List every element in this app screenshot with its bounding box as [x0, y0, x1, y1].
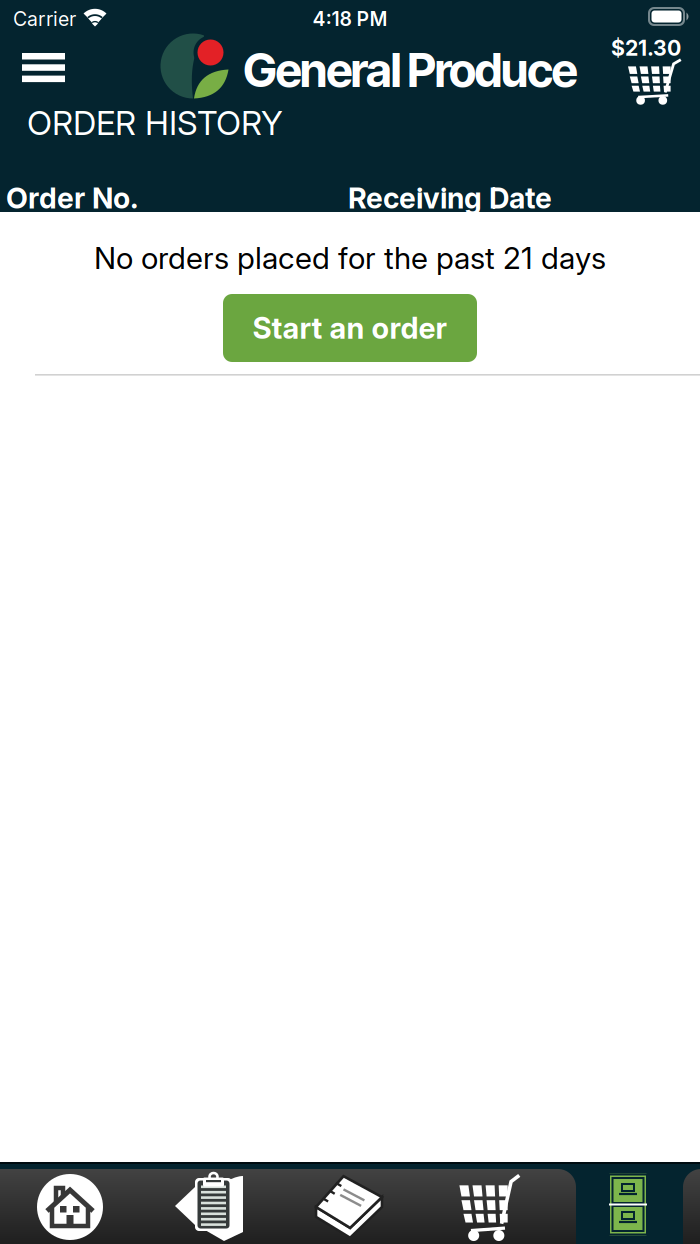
button[interactable]: Menu — [22, 53, 65, 82]
button[interactable]: Home — [0, 1162, 140, 1244]
staticText: 4:18 PM — [312, 7, 387, 31]
button[interactable]: Order History — [560, 1162, 700, 1244]
staticText: Carrier — [13, 7, 76, 31]
staticText: Receiving Date — [348, 181, 552, 215]
button[interactable]: Catalog — [280, 1162, 420, 1244]
staticText: General Produce — [243, 42, 578, 98]
button[interactable]: Start an order — [223, 294, 477, 362]
button[interactable]: Cart — [592, 28, 700, 108]
button[interactable]: Cart — [420, 1162, 560, 1244]
staticText: ORDER HISTORY — [27, 103, 283, 143]
button[interactable]: Orders — [140, 1162, 280, 1244]
staticText: Order No. — [6, 181, 139, 215]
staticText: Start an order — [252, 310, 447, 346]
staticText: No orders placed for the past 21 days — [94, 240, 606, 276]
staticText: $21.30 — [611, 35, 681, 61]
